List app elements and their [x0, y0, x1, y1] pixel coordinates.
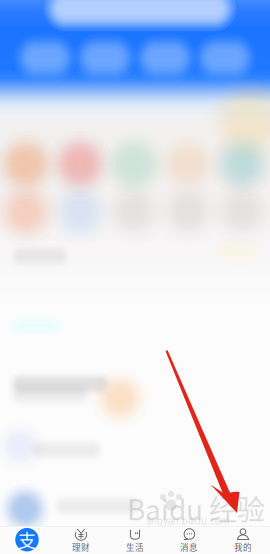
button[interactable]: 我的: [216, 526, 270, 554]
staticText: jingyan.baidu.com: [147, 515, 229, 527]
button[interactable]: 生活: [108, 526, 162, 554]
staticText: 支: [18, 527, 36, 553]
staticText: 理财: [72, 541, 90, 553]
button[interactable]: 消息: [162, 526, 216, 554]
staticText: 生活: [126, 541, 144, 553]
button[interactable]: 理财: [54, 526, 108, 554]
staticText: Baidu 经验: [127, 488, 265, 528]
staticText: 我的: [234, 541, 252, 553]
staticText: 消息: [180, 541, 198, 553]
button[interactable]: 首页: [0, 526, 54, 554]
